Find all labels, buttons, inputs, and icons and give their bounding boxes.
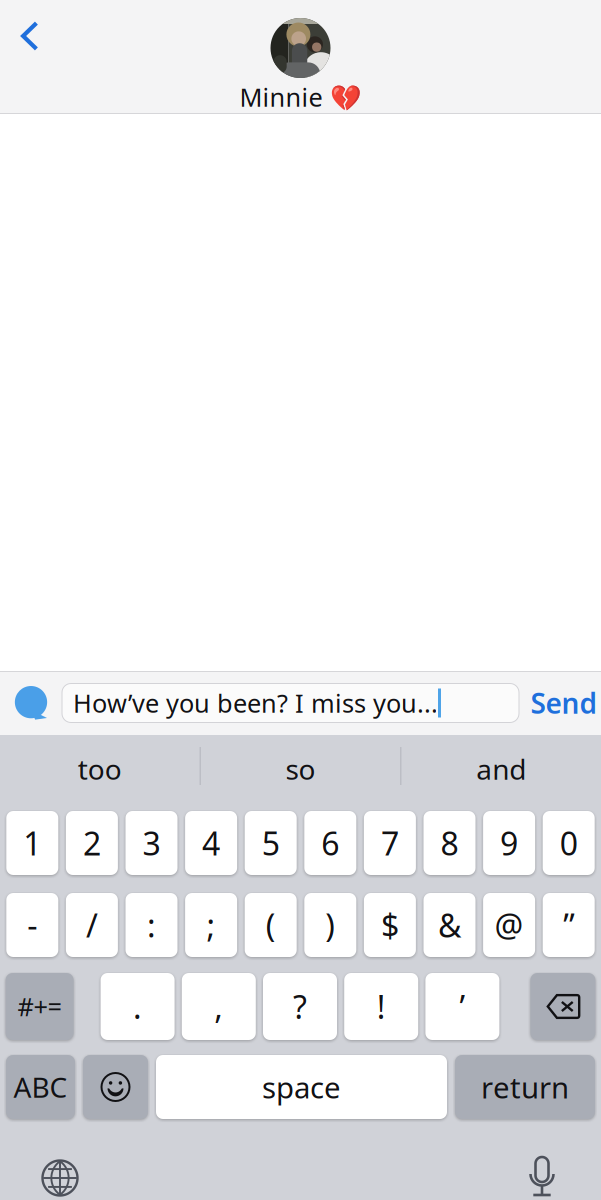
staticText: #+= xyxy=(18,990,62,1023)
button[interactable]: ? xyxy=(263,973,337,1040)
staticText: too xyxy=(78,750,122,788)
button[interactable]: - xyxy=(6,893,58,957)
button[interactable]: #+= xyxy=(6,973,74,1040)
button[interactable]: ! xyxy=(344,973,418,1040)
button[interactable]: Minnie, contact info xyxy=(239,0,361,114)
staticText: : xyxy=(147,904,156,946)
button[interactable]: @ xyxy=(483,893,535,957)
button[interactable]: so xyxy=(201,734,400,794)
staticText: Minnie 💔 xyxy=(239,80,361,114)
button[interactable]: Dictate xyxy=(520,1155,564,1200)
staticText: ( xyxy=(266,904,276,946)
staticText: 9 xyxy=(500,822,518,864)
staticText: . xyxy=(133,985,142,1028)
staticText: 0 xyxy=(560,822,578,864)
staticText: ) xyxy=(325,904,335,946)
button[interactable]: and xyxy=(401,734,601,794)
button[interactable]: , xyxy=(182,973,256,1040)
staticText: ” xyxy=(563,904,574,946)
button[interactable]: too xyxy=(0,734,200,794)
staticText: ’ xyxy=(459,985,465,1028)
button[interactable]: $ xyxy=(364,893,416,957)
staticText: 8 xyxy=(440,822,458,864)
button[interactable]: 0 xyxy=(543,811,595,875)
button[interactable]: 4 xyxy=(185,811,237,875)
button[interactable]: . xyxy=(101,973,175,1040)
staticText: 5 xyxy=(262,822,280,864)
staticText: & xyxy=(438,904,461,946)
staticText: ! xyxy=(377,985,386,1028)
button[interactable]: 8 xyxy=(423,811,475,875)
staticText: , xyxy=(214,985,223,1028)
staticText: so xyxy=(285,750,315,788)
staticText: 2 xyxy=(83,822,101,864)
staticText: @ xyxy=(495,904,524,946)
button[interactable]: ” xyxy=(543,893,595,957)
button[interactable]: ( xyxy=(245,893,297,957)
button[interactable]: Emoji xyxy=(83,1055,148,1119)
button[interactable]: & xyxy=(423,893,475,957)
button[interactable]: ’ xyxy=(425,973,499,1040)
staticText: $ xyxy=(381,904,399,946)
button[interactable]: return xyxy=(455,1055,595,1119)
staticText: 3 xyxy=(142,822,160,864)
button[interactable]: space xyxy=(156,1055,447,1119)
staticText: 6 xyxy=(321,822,339,864)
staticText: 1 xyxy=(23,822,41,864)
button[interactable]: 5 xyxy=(245,811,297,875)
button[interactable]: 7 xyxy=(364,811,416,875)
button[interactable]: 3 xyxy=(125,811,177,875)
button[interactable]: : xyxy=(125,893,177,957)
button[interactable]: / xyxy=(66,893,118,957)
staticText: return xyxy=(481,1067,569,1106)
staticText: 7 xyxy=(381,822,399,864)
staticText: space xyxy=(262,1067,341,1106)
button[interactable]: Delete xyxy=(530,973,595,1040)
staticText: ; xyxy=(207,904,216,946)
staticText: / xyxy=(86,904,98,946)
button[interactable]: Next keyboard xyxy=(38,1155,82,1200)
staticText: ABC xyxy=(13,1068,67,1106)
staticText: ? xyxy=(293,985,307,1028)
button[interactable]: Send xyxy=(519,681,601,725)
staticText: and xyxy=(476,750,526,788)
button[interactable]: ABC xyxy=(6,1055,75,1119)
button[interactable]: 1 xyxy=(6,811,58,875)
staticText: - xyxy=(27,904,37,946)
button[interactable]: ) xyxy=(304,893,356,957)
button[interactable]: 2 xyxy=(66,811,118,875)
button[interactable]: 6 xyxy=(304,811,356,875)
button[interactable]: Apps xyxy=(0,686,62,720)
button[interactable]: 9 xyxy=(483,811,535,875)
button[interactable]: ; xyxy=(185,893,237,957)
button[interactable]: Back xyxy=(0,0,54,67)
staticText: 4 xyxy=(202,822,220,864)
staticText: Send xyxy=(530,684,597,722)
staticText: How’ve you been? I miss you... xyxy=(73,686,438,720)
